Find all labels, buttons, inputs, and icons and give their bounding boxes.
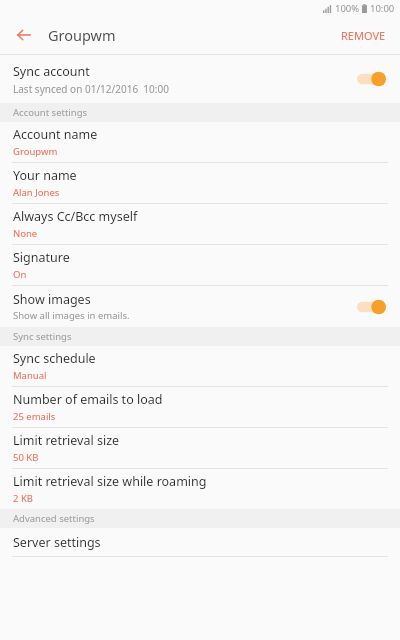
staticText: REMOVE — [341, 28, 386, 43]
button[interactable]: Your name — [0, 163, 400, 203]
staticText: Account name — [13, 126, 98, 143]
button[interactable]: Limit retrieval size — [0, 428, 400, 468]
button[interactable]: Toggle — [357, 71, 387, 87]
button[interactable]: Account name — [0, 122, 400, 162]
button[interactable]: Sync account — [0, 55, 400, 103]
staticText: Account settings — [13, 106, 88, 119]
button[interactable]: Signature — [0, 245, 400, 285]
staticText: Last synced on 01/12/2016 10:00 — [13, 82, 169, 96]
staticText: Number of emails to load — [13, 391, 163, 408]
staticText: Server settings — [13, 534, 101, 551]
button[interactable]: Show images — [0, 286, 400, 327]
button[interactable]: Limit retrieval size while roaming — [0, 469, 400, 509]
staticText: 25 emails — [13, 410, 56, 423]
staticText: Show all images in emails. — [13, 309, 130, 322]
button[interactable]: Server settings — [0, 528, 400, 556]
button[interactable]: Sync schedule — [0, 346, 400, 386]
staticText: On — [13, 268, 27, 281]
staticText: Limit retrieval size while roaming — [13, 473, 207, 490]
button[interactable]: REMOVE — [337, 22, 390, 49]
staticText: Sync schedule — [13, 350, 96, 367]
staticText: 100% — [335, 2, 360, 15]
button[interactable]: Back — [8, 19, 40, 51]
button[interactable]: Toggle — [357, 299, 387, 315]
button[interactable]: Number of emails to load — [0, 387, 400, 427]
staticText: Alan Jones — [13, 186, 60, 199]
staticText: Groupwm — [48, 25, 116, 45]
staticText: Manual — [13, 369, 47, 382]
staticText: 50 KB — [13, 451, 39, 464]
staticText: Groupwm — [13, 145, 58, 158]
button[interactable]: Always Cc/Bcc myself — [0, 204, 400, 244]
staticText: Show images — [13, 291, 91, 308]
staticText: Sync settings — [13, 330, 72, 343]
staticText: Sync account — [13, 63, 90, 80]
staticText: 2 KB — [13, 492, 33, 505]
staticText: Your name — [13, 167, 77, 184]
staticText: Limit retrieval size — [13, 432, 120, 449]
staticText: None — [13, 227, 38, 240]
staticText: Advanced settings — [13, 512, 95, 525]
staticText: Signature — [13, 249, 70, 266]
staticText: Always Cc/Bcc myself — [13, 208, 138, 225]
staticText: 10:00 — [370, 2, 395, 15]
